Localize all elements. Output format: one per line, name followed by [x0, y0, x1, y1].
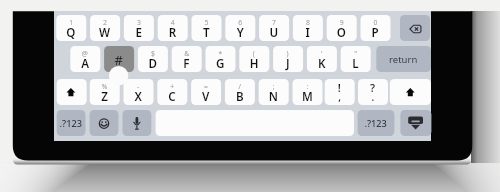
button[interactable]: Hide keyboard	[400, 110, 430, 136]
button[interactable]: L	[341, 46, 371, 72]
button[interactable]: Shift	[391, 79, 427, 105]
button[interactable]: W	[90, 15, 120, 41]
button[interactable]: G	[206, 46, 236, 72]
button[interactable]: U	[259, 15, 289, 41]
button[interactable]: T	[192, 15, 222, 41]
button[interactable]: M	[293, 79, 323, 105]
button[interactable]: return	[376, 46, 431, 72]
button[interactable]: I	[293, 15, 323, 41]
button[interactable]: S	[104, 46, 134, 72]
button[interactable]: X	[124, 79, 154, 105]
button[interactable]: H	[239, 46, 269, 72]
button[interactable]: K	[307, 46, 337, 72]
button[interactable]: !	[326, 79, 356, 105]
button[interactable]: Numbers and symbols	[359, 110, 395, 136]
button[interactable]: P	[360, 15, 390, 41]
button[interactable]: Delete	[400, 15, 430, 41]
button[interactable]: E	[124, 15, 154, 41]
button[interactable]: N	[259, 79, 289, 105]
button[interactable]: F	[172, 46, 202, 72]
button[interactable]: O	[327, 15, 357, 41]
button[interactable]: B	[225, 79, 255, 105]
button[interactable]: J	[273, 46, 303, 72]
button[interactable]: Voice input	[124, 110, 145, 136]
button[interactable]: A	[70, 46, 100, 72]
button[interactable]: Numbers and symbols	[57, 110, 84, 136]
button[interactable]: Q	[56, 15, 86, 41]
button[interactable]: ?	[360, 79, 390, 105]
button[interactable]: Shift	[57, 79, 87, 105]
button[interactable]: Z	[90, 79, 120, 105]
button[interactable]: C	[157, 79, 187, 105]
button[interactable]: Y	[225, 15, 255, 41]
button[interactable]: D	[138, 46, 168, 72]
button[interactable]: R	[158, 15, 188, 41]
button[interactable]: Emoji	[90, 110, 113, 136]
button[interactable]: V	[191, 79, 221, 105]
